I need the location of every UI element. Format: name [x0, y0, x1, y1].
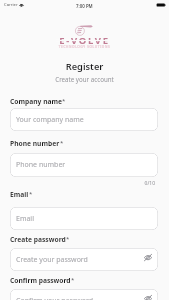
staticText: Confirm your password: [16, 296, 94, 300]
staticText: *: [66, 235, 70, 243]
staticText: Email: [10, 190, 29, 199]
staticText: *: [29, 190, 33, 198]
button[interactable]: Your company name: [10, 108, 158, 131]
button[interactable]: Create your password: [10, 248, 158, 271]
staticText: Confirm password: [10, 276, 71, 285]
staticText: Phone number: [10, 139, 60, 148]
button[interactable]: Confirm your password: [10, 289, 158, 300]
staticText: Create password: [10, 235, 66, 244]
staticText: Phone number: [16, 160, 66, 170]
button[interactable]: Toggle password visibility: [141, 292, 154, 300]
staticText: Company name: [10, 97, 62, 106]
staticText: Register: [0, 60, 169, 73]
staticText: TECHNOLOGY SOLUTIONS: [0, 45, 169, 49]
button[interactable]: Phone number: [10, 153, 158, 177]
staticText: Carrier: [4, 2, 18, 8]
staticText: *: [62, 97, 66, 105]
staticText: Create your account: [0, 75, 169, 83]
staticText: Your company name: [16, 115, 84, 125]
staticText: 7:00 PM: [76, 3, 93, 9]
staticText: 0/10: [0, 180, 155, 187]
staticText: *: [71, 276, 75, 284]
staticText: *: [60, 139, 64, 147]
staticText: Create your password: [16, 255, 88, 265]
button[interactable]: Toggle password visibility: [141, 251, 154, 264]
staticText: E-VOLVE: [0, 34, 169, 47]
button[interactable]: Email: [10, 207, 158, 230]
staticText: Email: [16, 214, 34, 224]
